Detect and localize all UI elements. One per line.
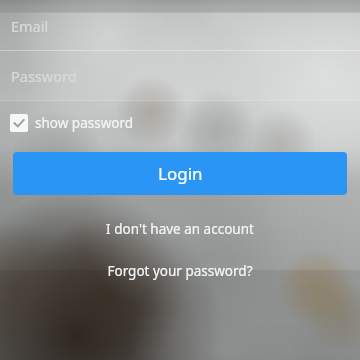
- button[interactable]: Email: [0, 0, 360, 51]
- staticText: Email: [11, 16, 49, 36]
- staticText: I don't have an account: [106, 220, 254, 238]
- staticText: Forgot your password?: [107, 262, 253, 280]
- button[interactable]: Login: [13, 152, 347, 195]
- button[interactable]: show password: [10, 110, 142, 136]
- staticText: show password: [35, 114, 134, 132]
- staticText: Password: [11, 66, 77, 86]
- button[interactable]: I don't have an account: [0, 216, 360, 242]
- button[interactable]: Forgot your password?: [0, 258, 360, 284]
- staticText: Login: [158, 162, 203, 185]
- button[interactable]: Password: [0, 51, 360, 101]
